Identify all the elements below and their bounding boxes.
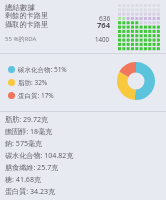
staticText: 糖: 41.68克 bbox=[5, 174, 42, 184]
staticText: 總結數據 bbox=[5, 3, 35, 12]
staticText: 蛋白質: 34.23克 bbox=[5, 186, 56, 196]
staticText: 脂肪: 29.72克 bbox=[5, 114, 49, 124]
staticText: 脂肪: 32% bbox=[18, 78, 48, 87]
staticText: 剩餘的卡路里 bbox=[5, 11, 49, 20]
staticText: 碳水化合物: 104.82克 bbox=[5, 150, 74, 160]
staticText: 鈉: 575毫克 bbox=[5, 138, 43, 148]
staticText: 55 %的RDA bbox=[5, 35, 37, 43]
staticText: 碳水化合物: 51% bbox=[18, 65, 67, 74]
staticText: 636 bbox=[99, 14, 111, 23]
staticText: 膳食纖維: 25.7克 bbox=[5, 162, 59, 172]
staticText: 1400 bbox=[95, 35, 110, 43]
staticText: 蛋白質: 17% bbox=[18, 91, 54, 100]
staticText: 膽固醇: 18毫克 bbox=[5, 126, 53, 136]
staticText: 攝取的卡路里 bbox=[5, 20, 49, 29]
staticText: 764 bbox=[97, 20, 111, 30]
